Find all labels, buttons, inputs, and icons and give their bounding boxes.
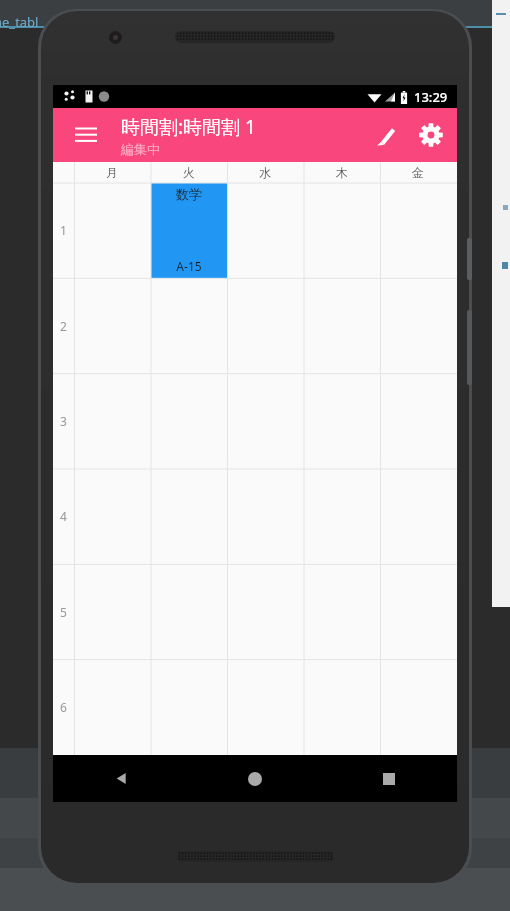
button[interactable]: Recent apps — [365, 755, 413, 802]
staticText: 3 — [60, 413, 67, 429]
button[interactable]: Open navigation menu — [63, 108, 109, 162]
button[interactable]: Period 6 金 — [380, 659, 456, 754]
button[interactable]: Period 3 水 — [227, 373, 303, 468]
button[interactable]: Back — [97, 755, 145, 802]
staticText: A-15 — [176, 258, 202, 274]
button[interactable]: Period 3 月 — [74, 373, 150, 468]
staticText: 13:29 — [414, 88, 448, 106]
staticText: 1 — [60, 222, 67, 238]
staticText: 数学 — [176, 186, 202, 202]
button[interactable]: Period 6 水 — [227, 659, 303, 754]
staticText: 火 — [183, 165, 195, 180]
staticText: 2 — [60, 318, 67, 334]
button[interactable]: Period 5 水 — [227, 564, 303, 659]
button[interactable]: Period 2 月 — [74, 278, 150, 373]
staticText: 時間割:時間割 1 — [121, 114, 256, 140]
staticText: ne_tabl — [0, 13, 39, 31]
staticText: 木 — [336, 165, 348, 180]
button[interactable]: Period 2 金 — [380, 278, 456, 373]
staticText: 6 — [60, 699, 67, 715]
staticText: 編集中 — [121, 141, 160, 157]
button[interactable]: Period 6 月 — [74, 659, 150, 754]
button[interactable]: Period 1 火 — [151, 183, 227, 278]
button[interactable]: Period 3 金 — [380, 373, 456, 468]
staticText: 水 — [259, 165, 271, 180]
button[interactable]: Settings — [409, 111, 453, 159]
staticText: 金 — [412, 165, 424, 180]
staticText: 4 — [60, 508, 67, 524]
button[interactable]: Period 5 金 — [380, 564, 456, 659]
button[interactable]: Edit — [361, 111, 409, 159]
button[interactable]: Home — [231, 755, 279, 802]
staticText: 月 — [106, 165, 118, 180]
button[interactable]: Period 2 水 — [227, 278, 303, 373]
staticText: 5 — [60, 604, 67, 620]
button[interactable]: Period 5 月 — [74, 564, 150, 659]
